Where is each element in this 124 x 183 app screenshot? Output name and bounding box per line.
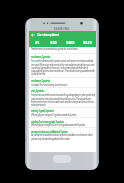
staticText: win, 2 points (31, 89, 44, 93)
button[interactable]: CHARTS (62, 38, 79, 47)
staticText: Frequent counted for a win instead of a … (31, 93, 96, 106)
button[interactable] (29, 128, 96, 142)
staticText: Winning by a margin of 1 goal is awarded… (31, 113, 77, 117)
button[interactable]: GPL (29, 38, 45, 47)
staticText: no draw. The score being scored counts. (31, 83, 68, 87)
staticText: Neither team is awarded any points for a… (31, 47, 78, 51)
staticText: RESULTS (83, 41, 92, 45)
staticText: An away win is awarded a bonus point in … (31, 133, 96, 140)
button[interactable]: RULES (45, 38, 62, 47)
staticText: RULES (50, 41, 57, 45)
button[interactable]: Back (30, 32, 36, 38)
button[interactable]: RESULTS (79, 38, 96, 47)
staticText: no draws, 2 points (31, 79, 50, 83)
staticText: GPL (35, 41, 39, 45)
button[interactable] (29, 77, 96, 87)
staticText: Winning by a margin of 2 or more goals i… (31, 123, 85, 127)
staticText: SAMSUNG (54, 27, 70, 31)
button[interactable] (29, 45, 96, 53)
staticText: win by 2 or more goals, 3 points (31, 120, 64, 124)
button[interactable] (29, 117, 96, 127)
staticText: CHARTS (66, 41, 75, 45)
staticText: For matches that result in goals scored,… (31, 59, 96, 75)
staticText: win by 1 goal, 2 points (31, 109, 54, 113)
staticText: no draws, 2 points (31, 55, 50, 59)
button[interactable] (29, 53, 96, 77)
button[interactable]: Back (29, 31, 96, 38)
staticText: away win bonus, additional 1 point (31, 130, 68, 134)
staticText: Our rules explained (37, 33, 59, 37)
button[interactable] (29, 107, 96, 117)
button[interactable] (29, 87, 96, 107)
